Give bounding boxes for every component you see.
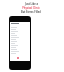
staticText: Just Like a — [25, 2, 38, 6]
staticText: But Stress Filled — [21, 10, 41, 14]
staticText: Physical Clinic — [22, 6, 40, 10]
